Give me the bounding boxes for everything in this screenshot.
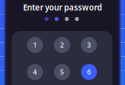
staticText: 4 bbox=[33, 68, 37, 76]
button[interactable]: 4 bbox=[27, 64, 43, 80]
staticText: 6 bbox=[87, 68, 91, 76]
button[interactable]: 2 bbox=[54, 37, 70, 53]
staticText: 5 bbox=[60, 68, 64, 76]
staticText: 1 bbox=[33, 41, 37, 49]
button[interactable]: 6 bbox=[81, 64, 97, 80]
button[interactable]: 1 bbox=[27, 37, 43, 53]
staticText: 2 bbox=[60, 41, 64, 49]
staticText: 3 bbox=[87, 41, 91, 49]
staticText: Enter your password bbox=[23, 2, 102, 13]
button[interactable]: 3 bbox=[81, 37, 97, 53]
button[interactable]: 5 bbox=[54, 64, 70, 80]
